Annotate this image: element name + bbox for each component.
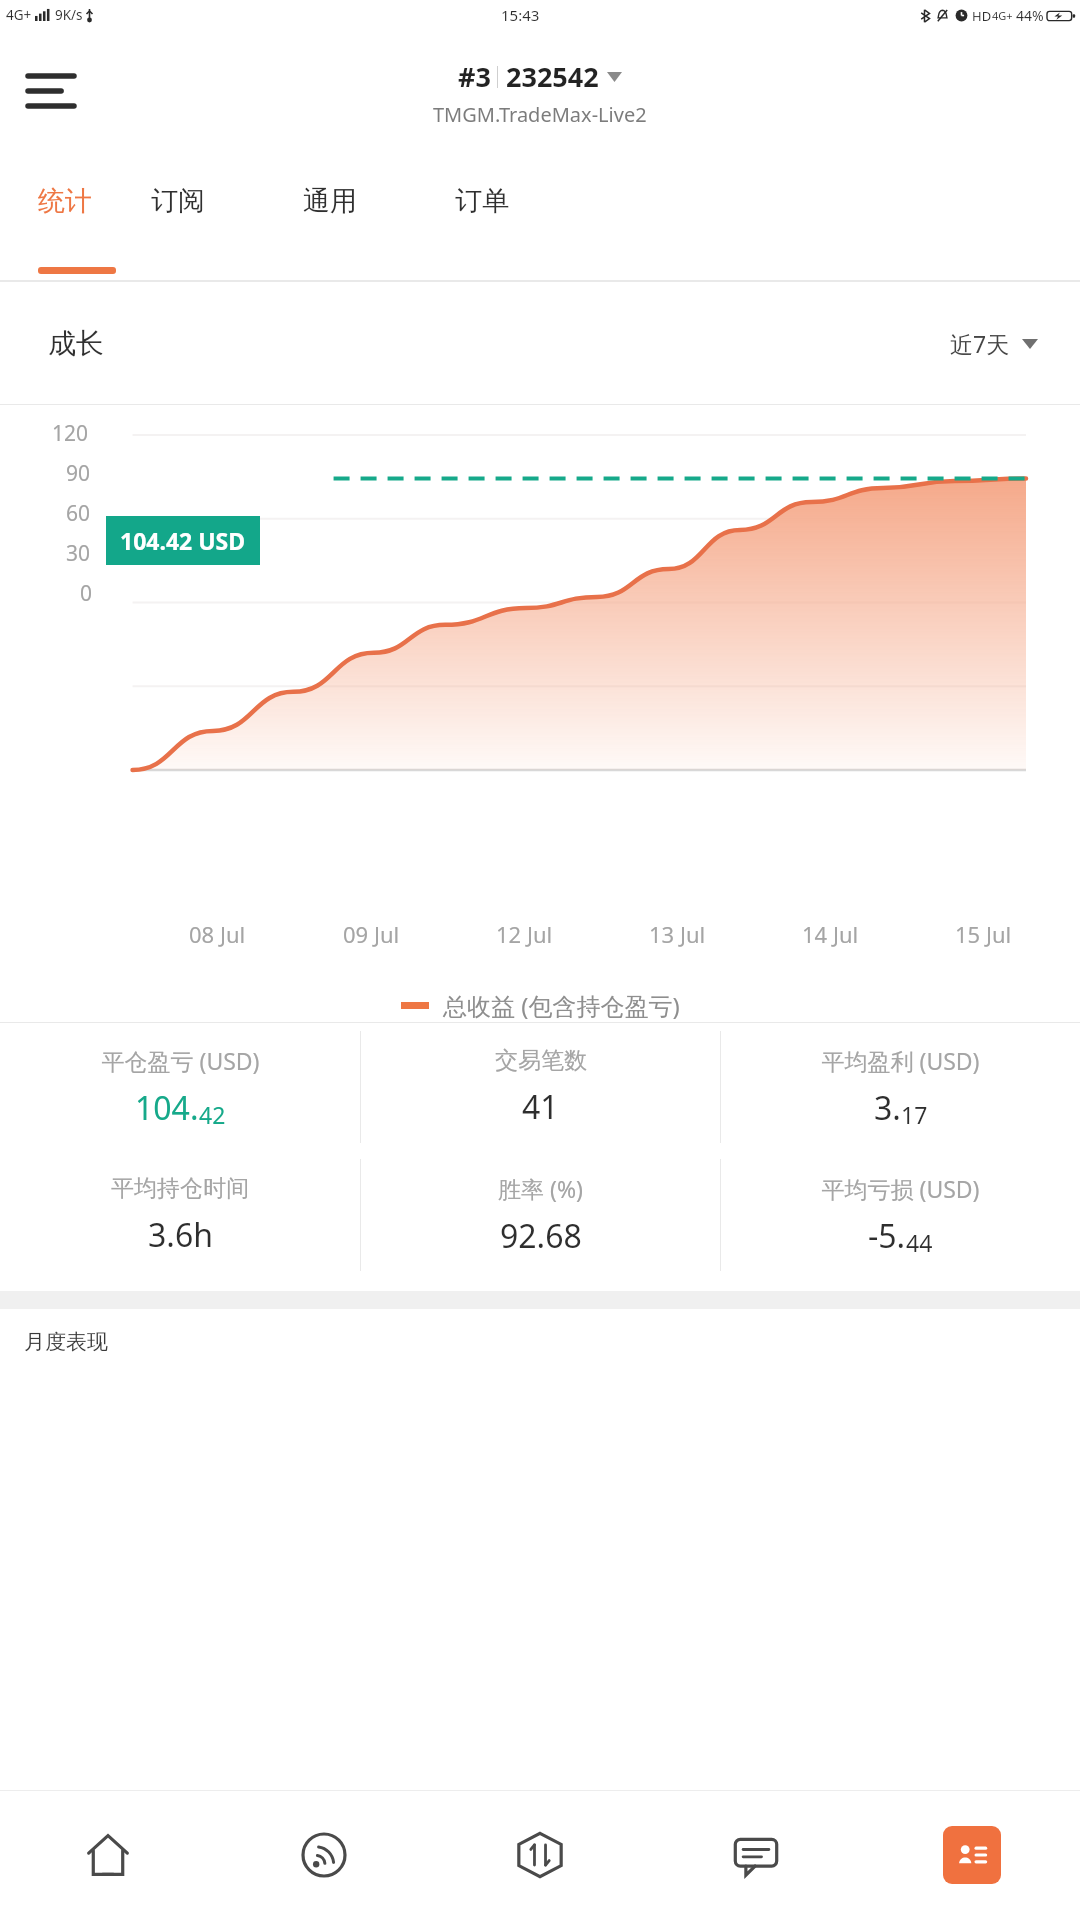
button[interactable]: #3 [433, 58, 647, 128]
button[interactable]: Signals [216, 1790, 432, 1920]
staticText: 0 [80, 579, 93, 608]
staticText: 平均盈利 (USD) [821, 1045, 980, 1076]
button[interactable]: Messages [648, 1790, 864, 1920]
staticText: 30 [66, 539, 91, 568]
staticText: 15 Jul [955, 919, 1012, 949]
staticText: 4G+ [6, 6, 32, 24]
button[interactable]: Profile [943, 1826, 1001, 1884]
staticText: 08 Jul [189, 919, 246, 949]
staticText: 通用 [303, 184, 357, 218]
button[interactable]: 平均持仓时间 [0, 1151, 360, 1279]
staticText: HD [972, 7, 992, 25]
staticText: 月度表现 [24, 1329, 108, 1355]
staticText: 15:43 [501, 5, 540, 25]
staticText: 3.6h [148, 1213, 213, 1257]
staticText: 平均亏损 (USD) [821, 1173, 980, 1204]
button[interactable]: 统计 [38, 152, 151, 280]
button[interactable]: Trade [432, 1790, 648, 1920]
button[interactable]: 平均盈利 (USD) [721, 1023, 1080, 1151]
staticText: 统计 [38, 184, 92, 218]
staticText: 232542 [506, 58, 599, 95]
staticText: 09 Jul [343, 919, 400, 949]
staticText: 订阅 [151, 184, 205, 218]
staticText: 104.42 USD [120, 525, 246, 556]
staticText: 总收益 (包含持仓盈亏) [443, 989, 680, 1022]
staticText: 17 [901, 1099, 928, 1130]
button[interactable]: 订阅 [151, 152, 303, 280]
staticText: 14 Jul [802, 919, 859, 949]
staticText: 交易笔数 [495, 1046, 587, 1075]
button[interactable]: 平均亏损 (USD) [721, 1151, 1080, 1279]
staticText: #3 [458, 58, 491, 95]
button[interactable]: Home [0, 1790, 216, 1920]
staticText: TMGM.TradeMax-Live2 [433, 101, 647, 128]
staticText: 44 [906, 1227, 933, 1258]
staticText: 胜率 (%) [498, 1173, 583, 1204]
staticText: 120 [52, 419, 89, 448]
button[interactable]: 平仓盈亏 (USD) [0, 1023, 360, 1151]
button[interactable]: 交易笔数 [361, 1023, 720, 1151]
staticText: 订单 [455, 184, 509, 218]
staticText: -5. [868, 1214, 906, 1258]
staticText: 3. [874, 1086, 901, 1130]
staticText: 平均持仓时间 [111, 1174, 249, 1203]
staticText: 4G+ [992, 8, 1013, 23]
staticText: 104. [135, 1086, 199, 1130]
staticText: 12 Jul [496, 919, 553, 949]
staticText: 41 [522, 1085, 559, 1129]
staticText: 42 [199, 1099, 226, 1130]
button[interactable]: 通用 [303, 152, 455, 280]
staticText: 44% [1016, 6, 1044, 25]
button[interactable]: Menu [20, 60, 82, 122]
staticText: 成长 [48, 326, 104, 361]
staticText: 60 [66, 499, 91, 528]
staticText: 9K/s [55, 6, 83, 24]
staticText: 92.68 [500, 1214, 582, 1258]
staticText: 13 Jul [649, 919, 706, 949]
button[interactable]: 胜率 (%) [361, 1151, 720, 1279]
button[interactable]: 近7天 [950, 328, 1038, 359]
staticText: 平仓盈亏 (USD) [101, 1045, 260, 1076]
staticText: 近7天 [950, 328, 1010, 359]
staticText: 90 [66, 459, 91, 488]
button[interactable]: 订单 [455, 152, 607, 280]
